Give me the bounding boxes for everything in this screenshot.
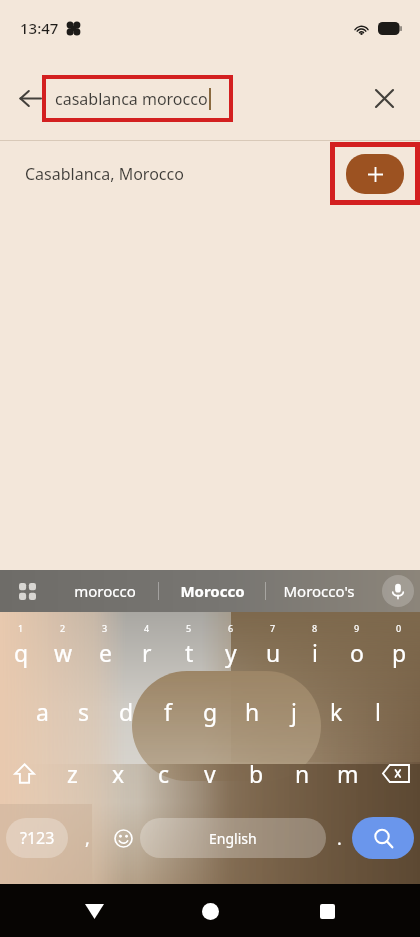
staticText: l bbox=[375, 696, 381, 727]
button[interactable]: Morocco bbox=[159, 570, 265, 612]
staticText: English bbox=[209, 829, 257, 848]
staticText: 4 bbox=[144, 622, 150, 634]
staticText: a bbox=[36, 696, 49, 727]
staticText: u bbox=[266, 637, 281, 668]
staticText: . bbox=[337, 826, 342, 851]
staticText: k bbox=[330, 696, 343, 727]
button[interactable]: Backspace bbox=[371, 742, 420, 804]
button[interactable]: j bbox=[273, 680, 315, 742]
staticText: morocco bbox=[74, 581, 136, 601]
staticText: x bbox=[112, 758, 125, 789]
staticText: 7 bbox=[270, 622, 276, 634]
button[interactable]: 8 bbox=[294, 618, 336, 680]
button[interactable]: morocco bbox=[52, 570, 158, 612]
button[interactable]: , bbox=[68, 818, 106, 858]
button[interactable]: a bbox=[21, 680, 63, 742]
staticText: casablanca morocco bbox=[55, 88, 208, 110]
button[interactable]: Shift bbox=[0, 742, 49, 804]
button[interactable]: 5 bbox=[168, 618, 210, 680]
button[interactable]: n bbox=[279, 742, 325, 804]
staticText: h bbox=[245, 696, 260, 727]
button[interactable]: 4 bbox=[126, 618, 168, 680]
button[interactable]: Voice input bbox=[382, 575, 414, 607]
button[interactable]: Back bbox=[8, 76, 52, 120]
staticText: Casablanca, Morocco bbox=[25, 163, 184, 185]
button[interactable]: k bbox=[315, 680, 357, 742]
button[interactable]: l bbox=[357, 680, 399, 742]
button[interactable]: Keyboard options bbox=[10, 574, 44, 608]
staticText: 3 bbox=[102, 622, 108, 634]
staticText: p bbox=[392, 637, 407, 668]
button[interactable]: s bbox=[63, 680, 105, 742]
staticText: 0 bbox=[396, 622, 402, 634]
button[interactable]: g bbox=[189, 680, 231, 742]
button[interactable]: Casablanca, Morocco bbox=[0, 141, 420, 206]
staticText: z bbox=[67, 758, 78, 789]
staticText: y bbox=[225, 637, 237, 668]
button[interactable]: c bbox=[141, 742, 187, 804]
staticText: s bbox=[78, 696, 90, 727]
staticText: 9 bbox=[354, 622, 360, 634]
staticText: Morocco's bbox=[283, 581, 355, 601]
button[interactable]: 6 bbox=[210, 618, 252, 680]
button[interactable]: m bbox=[325, 742, 371, 804]
button[interactable]: casablanca morocco bbox=[46, 79, 229, 118]
staticText: o bbox=[350, 637, 364, 668]
staticText: 6 bbox=[228, 622, 234, 634]
staticText: r bbox=[142, 637, 152, 668]
button[interactable]: 2 bbox=[42, 618, 84, 680]
staticText: d bbox=[119, 696, 134, 727]
staticText: i bbox=[312, 637, 318, 668]
staticText: 5 bbox=[186, 622, 192, 634]
button[interactable]: 9 bbox=[336, 618, 378, 680]
button[interactable]: Clear bbox=[362, 76, 406, 120]
staticText: j bbox=[291, 696, 297, 727]
staticText: v bbox=[204, 758, 216, 789]
button[interactable]: ?123 bbox=[6, 818, 68, 858]
button[interactable]: d bbox=[105, 680, 147, 742]
staticText: f bbox=[164, 696, 172, 727]
button[interactable]: b bbox=[233, 742, 279, 804]
staticText: c bbox=[158, 758, 170, 789]
button[interactable]: Search bbox=[352, 817, 414, 859]
staticText: , bbox=[85, 826, 90, 851]
button[interactable]: . bbox=[326, 818, 352, 858]
button[interactable]: 7 bbox=[252, 618, 294, 680]
staticText: g bbox=[203, 696, 218, 727]
staticText: 13:47 bbox=[20, 18, 59, 38]
staticText: q bbox=[14, 637, 29, 668]
button[interactable]: 1 bbox=[0, 618, 42, 680]
staticText: e bbox=[99, 637, 112, 668]
button[interactable]: 3 bbox=[84, 618, 126, 680]
staticText: ?123 bbox=[20, 827, 55, 849]
staticText: w bbox=[54, 637, 73, 668]
button[interactable]: Recents bbox=[304, 888, 350, 934]
button[interactable]: Home bbox=[187, 888, 233, 934]
staticText: m bbox=[337, 758, 359, 789]
staticText: 8 bbox=[312, 622, 318, 634]
button[interactable]: f bbox=[147, 680, 189, 742]
button[interactable]: Add city bbox=[346, 154, 404, 194]
button[interactable]: h bbox=[231, 680, 273, 742]
button[interactable]: Emoji bbox=[106, 818, 140, 858]
staticText: b bbox=[249, 758, 264, 789]
staticText: 1 bbox=[18, 622, 24, 634]
button[interactable]: English bbox=[140, 818, 326, 858]
staticText: Morocco bbox=[180, 581, 245, 601]
staticText: 2 bbox=[60, 622, 66, 634]
staticText: n bbox=[295, 758, 310, 789]
button[interactable]: v bbox=[187, 742, 233, 804]
staticText: t bbox=[185, 637, 194, 668]
button[interactable]: Back bbox=[71, 888, 117, 934]
button[interactable]: z bbox=[49, 742, 95, 804]
button[interactable]: x bbox=[95, 742, 141, 804]
button[interactable]: Morocco's bbox=[266, 570, 372, 612]
button[interactable]: 0 bbox=[378, 618, 420, 680]
